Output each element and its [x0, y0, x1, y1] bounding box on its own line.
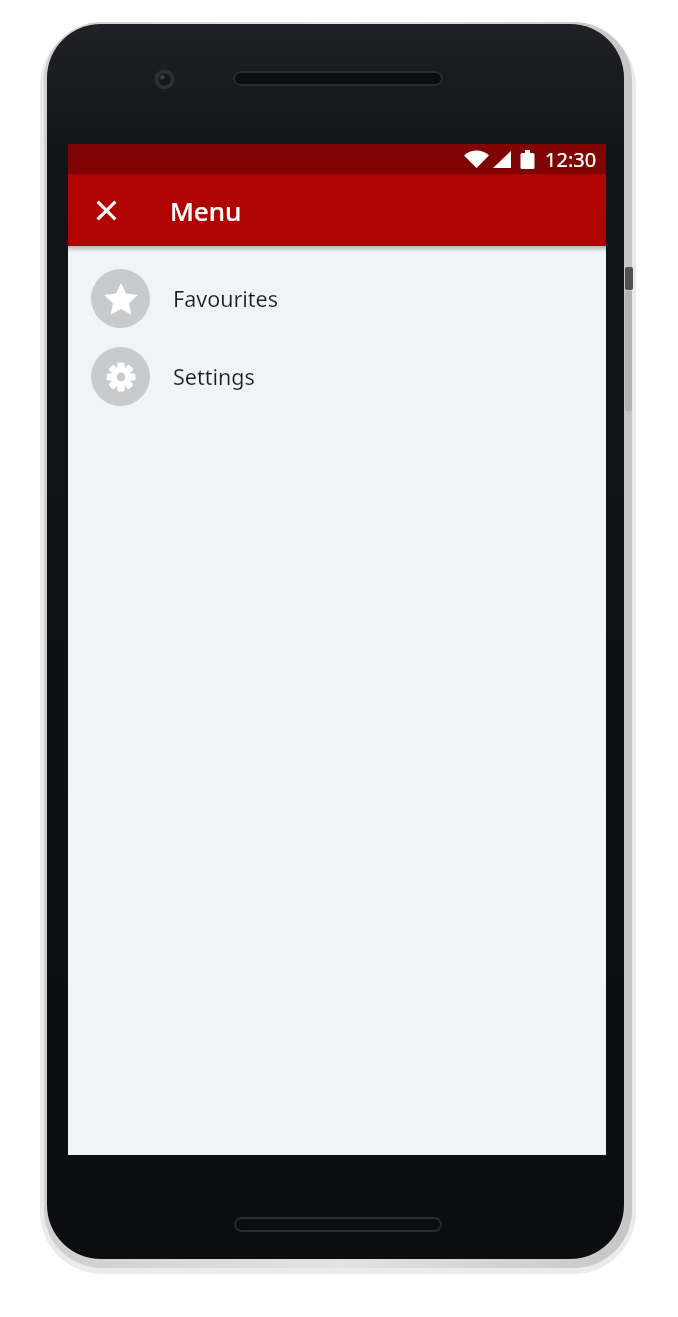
staticText: Favourites	[173, 284, 279, 313]
button[interactable]	[96, 200, 117, 221]
staticText: Menu	[170, 193, 242, 228]
staticText: Settings	[173, 362, 255, 391]
staticText: 12:30	[545, 146, 597, 173]
button[interactable]: Favourites	[68, 259, 606, 337]
button[interactable]: Settings	[68, 337, 606, 415]
